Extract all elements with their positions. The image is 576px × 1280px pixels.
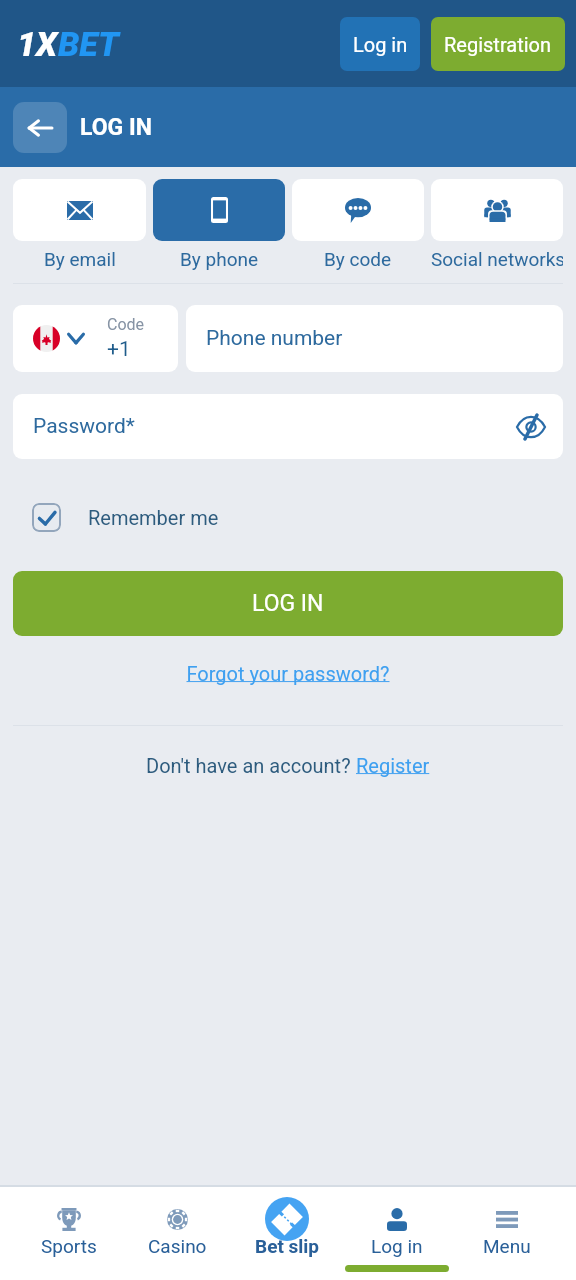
staticText: Phone number xyxy=(206,326,343,351)
button[interactable]: Sports xyxy=(14,1187,123,1280)
staticText: +1 xyxy=(107,337,131,362)
button[interactable]: Log in xyxy=(342,1187,452,1280)
button[interactable]: LOG IN xyxy=(13,571,563,636)
button[interactable]: Bet slip xyxy=(232,1187,342,1280)
button[interactable]: Log in xyxy=(340,17,420,71)
button[interactable]: Phone number xyxy=(186,305,563,372)
button[interactable]: Registration xyxy=(431,17,565,71)
staticText: By email xyxy=(44,248,116,270)
staticText: LOG IN xyxy=(80,114,152,141)
other: Bet slip xyxy=(265,1197,309,1241)
staticText: Forgot your password? xyxy=(0,662,576,685)
staticText: By code xyxy=(324,248,392,270)
button[interactable]: Social networks xyxy=(431,179,563,270)
staticText: Log in xyxy=(353,33,408,56)
staticText: Remember me xyxy=(88,506,219,529)
staticText: Registration xyxy=(444,33,552,56)
staticText: Code xyxy=(107,315,145,334)
staticText: LOG IN xyxy=(252,590,324,617)
button[interactable]: Code xyxy=(13,305,178,372)
staticText: BET xyxy=(58,24,119,64)
staticText: Bet slip xyxy=(255,1235,320,1257)
staticText: Menu xyxy=(483,1235,531,1257)
button[interactable]: Remember me xyxy=(32,503,576,532)
staticText: Sports xyxy=(41,1235,97,1257)
button[interactable]: Casino xyxy=(123,1187,232,1280)
staticText: Casino xyxy=(148,1235,207,1257)
staticText: Password* xyxy=(33,414,135,439)
staticText: Register xyxy=(356,754,430,777)
staticText: By phone xyxy=(180,248,259,270)
staticText: Log in xyxy=(371,1235,423,1257)
staticText: Social networks xyxy=(431,248,563,270)
button[interactable]: Back xyxy=(13,102,67,153)
button[interactable]: By email xyxy=(13,179,146,270)
staticText: Don't have an account? xyxy=(146,754,356,777)
button[interactable]: Password* xyxy=(13,394,563,459)
button[interactable]: Show password xyxy=(513,409,549,445)
button[interactable]: Menu xyxy=(452,1187,562,1280)
button[interactable]: By code xyxy=(292,179,424,270)
button[interactable]: By phone xyxy=(153,179,285,270)
staticText: 1X xyxy=(17,24,58,64)
